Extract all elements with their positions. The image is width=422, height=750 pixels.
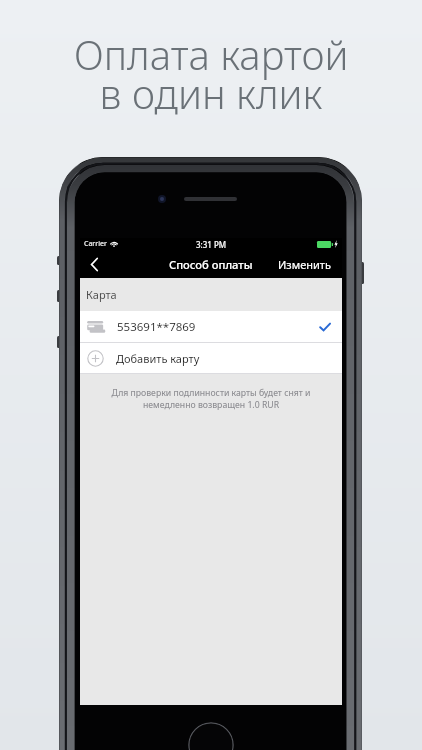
staticText: 3:31 PM (196, 239, 227, 250)
button[interactable]: Добавить карту (80, 343, 342, 373)
staticText: Carrier (84, 239, 107, 249)
staticText: Для проверки подлинности карты будет сня… (80, 387, 342, 410)
staticText: Оплата картой в один клик (0, 27, 422, 120)
staticText: Добавить карту (116, 351, 200, 366)
button[interactable]: Back (80, 250, 108, 278)
staticText: Карта (86, 287, 117, 302)
button[interactable]: Изменить (272, 250, 342, 278)
staticText: Способ оплаты (169, 257, 253, 272)
button[interactable]: 553691**7869 (80, 311, 342, 342)
staticText: 553691**7869 (117, 319, 196, 335)
staticText: Изменить (278, 257, 331, 272)
